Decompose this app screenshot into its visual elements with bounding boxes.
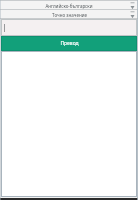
button[interactable]: Превод [1, 36, 137, 51]
staticText: Английско-български [45, 3, 93, 9]
staticText: Точно значение [52, 12, 87, 18]
button[interactable] [1, 19, 137, 36]
button[interactable]: Точно значение [0, 10, 138, 19]
staticText: Превод [60, 40, 79, 47]
button[interactable]: Английско-български [0, 1, 138, 10]
